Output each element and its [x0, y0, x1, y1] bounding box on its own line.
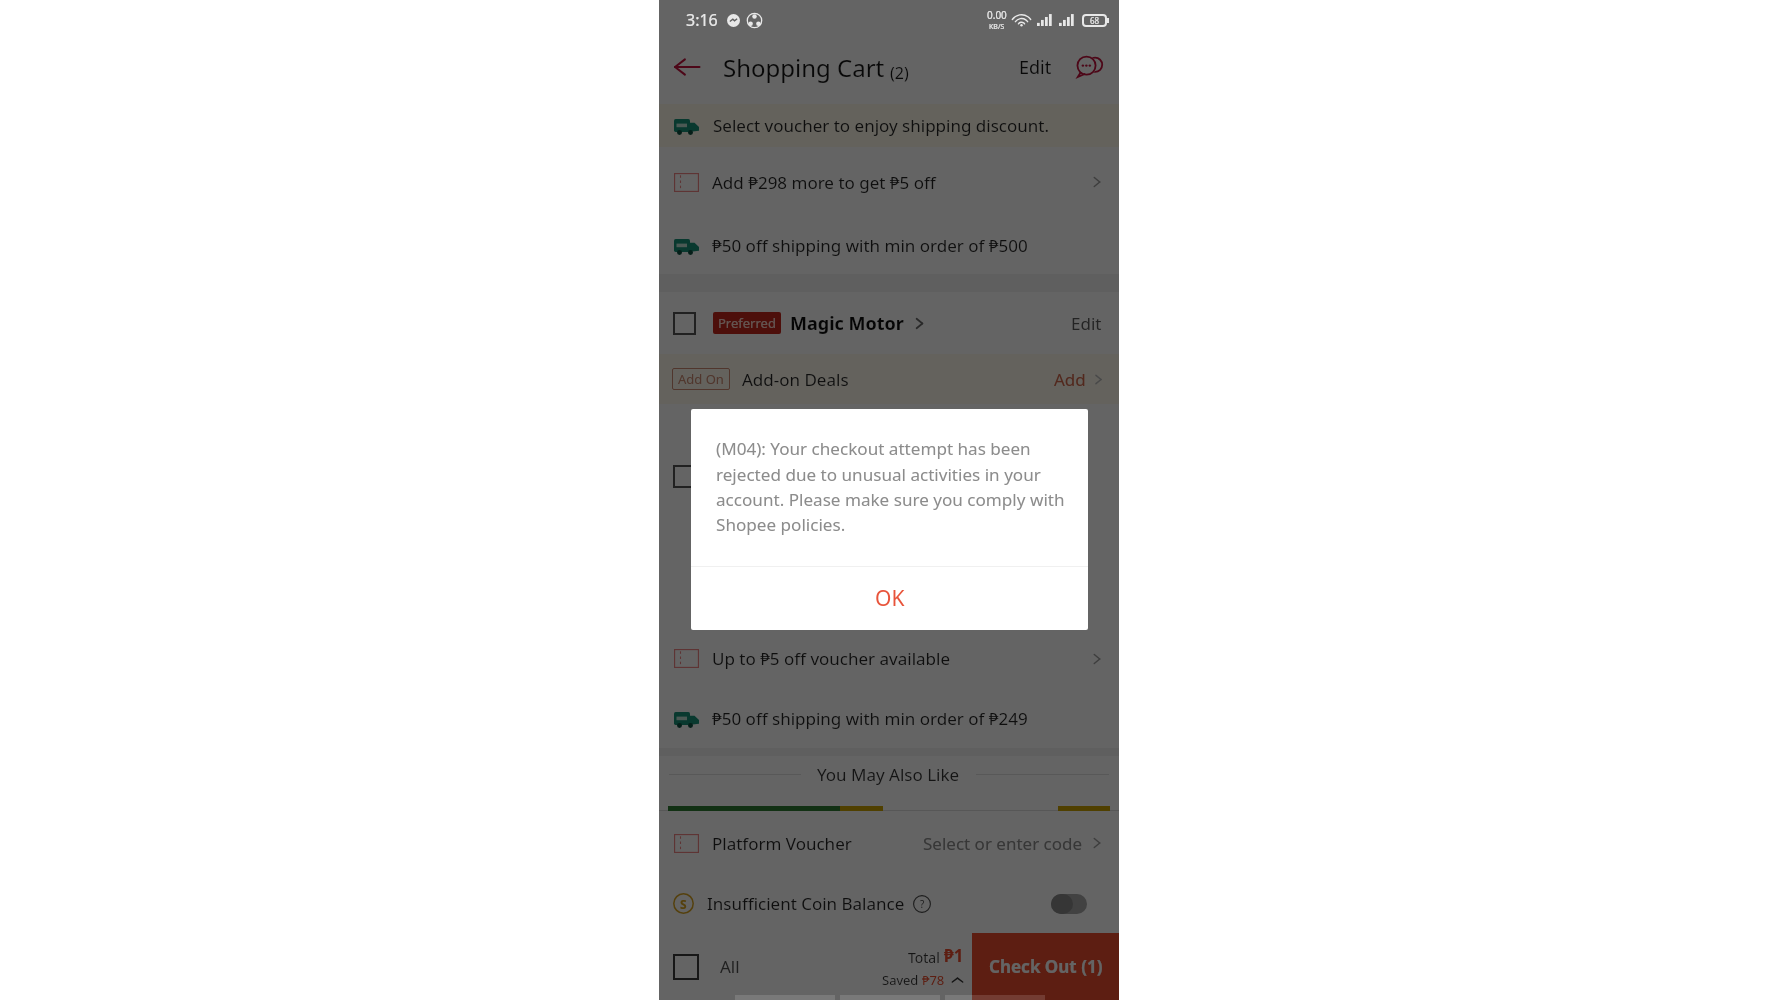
staticText: ₱50 off shipping with min order of ₱500	[712, 234, 1028, 257]
staticText: (2)	[890, 62, 909, 84]
staticText: 0.00	[987, 8, 1007, 22]
button[interactable]: Chat	[1071, 50, 1105, 84]
button[interactable]: Select shop	[673, 312, 696, 335]
button[interactable]: Add ₱298 more to get ₱5 off	[659, 147, 1119, 217]
button[interactable]: Select shop	[659, 292, 1119, 354]
button[interactable]: OK	[691, 567, 1088, 630]
staticText: S	[680, 896, 687, 912]
button[interactable]: Select item	[673, 465, 696, 488]
staticText: Product item	[814, 450, 905, 470]
staticText: KB/S	[989, 22, 1005, 32]
button[interactable]: Check Out (1)	[972, 933, 1119, 1000]
staticText: Select voucher to enjoy shipping discoun…	[713, 114, 1049, 137]
staticText: (M04): Your checkout attempt has been re…	[716, 437, 1073, 536]
staticText: 68	[1090, 15, 1100, 26]
button[interactable]: Add On	[659, 354, 1119, 404]
button[interactable]: ₱50 off shipping with min order of ₱249	[659, 689, 1119, 748]
button[interactable]: ₱50 off shipping with min order of ₱500	[659, 217, 1119, 274]
staticText: ₱1	[944, 944, 964, 967]
staticText: Saved	[882, 971, 922, 989]
staticText: ?	[920, 897, 925, 911]
staticText: Check Out (1)	[989, 955, 1103, 978]
staticText: Add On	[678, 370, 724, 388]
button[interactable]: Use coins	[1051, 894, 1087, 914]
staticText: Add	[1054, 368, 1086, 391]
staticText: ₱78	[922, 971, 945, 989]
staticText: All	[720, 955, 740, 978]
button[interactable]: Select item	[659, 404, 1119, 628]
staticText: Preferred	[718, 314, 776, 332]
staticText: OK	[875, 584, 905, 613]
staticText: Variation	[814, 480, 869, 498]
staticText: Shopping Cart	[723, 51, 885, 84]
staticText: Edit	[1071, 312, 1102, 335]
button[interactable]: Platform Voucher	[659, 812, 1119, 874]
button[interactable]: Edit	[1068, 306, 1105, 341]
staticText: Add ₱298 more to get ₱5 off	[712, 171, 936, 194]
staticText: You May Also Like	[817, 763, 960, 786]
staticText: Add-on Deals	[742, 368, 849, 391]
button[interactable]: S	[659, 874, 1119, 933]
staticText: Magic Motor	[790, 311, 904, 336]
staticText: Select or enter code	[923, 832, 1083, 855]
button[interactable]: Edit	[1013, 47, 1058, 88]
button[interactable]: Up to ₱5 off voucher available	[659, 628, 1119, 689]
staticText: 3:16	[686, 9, 718, 31]
staticText: Insufficient Coin Balance	[707, 892, 905, 915]
staticText: Edit	[1019, 55, 1052, 80]
button[interactable]: Back	[665, 45, 709, 89]
staticText: Total	[908, 948, 944, 967]
staticText: Up to ₱5 off voucher available	[712, 647, 950, 670]
button[interactable]: Select voucher to enjoy shipping discoun…	[659, 104, 1119, 147]
staticText: Platform Voucher	[712, 832, 852, 855]
button[interactable]: Select all	[673, 954, 699, 980]
staticText: ₱50 off shipping with min order of ₱249	[712, 707, 1028, 730]
